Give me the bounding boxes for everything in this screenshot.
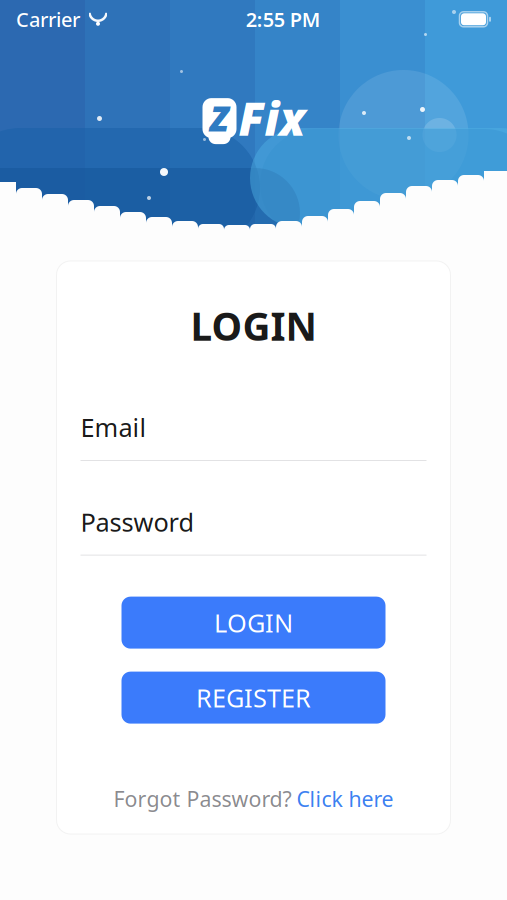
staticText xyxy=(80,6,85,33)
staticText: Email xyxy=(80,410,146,444)
staticText: REGISTER xyxy=(196,681,311,714)
staticText: Forgot Password? xyxy=(113,785,291,813)
staticText: LOGIN xyxy=(214,606,293,639)
staticText: LOGIN xyxy=(190,300,316,351)
button[interactable]: LOGIN xyxy=(121,597,385,649)
button[interactable]: REGISTER xyxy=(121,672,385,724)
staticText: Z xyxy=(210,95,229,141)
button[interactable]: Forgot Password? xyxy=(105,779,401,819)
staticText: Click here xyxy=(296,785,393,813)
staticText: 2:55 PM xyxy=(246,6,321,33)
staticText: Fix xyxy=(238,88,305,148)
staticText: Carrier xyxy=(16,6,80,33)
staticText: Password xyxy=(80,505,194,539)
